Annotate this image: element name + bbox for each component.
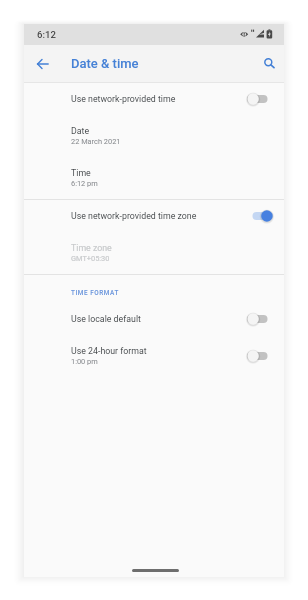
staticText: Use network-provided time [71, 94, 294, 104]
staticText: 6:12 pm [71, 179, 98, 188]
button[interactable]: Time [24, 157, 284, 199]
button[interactable]: Use network-provided time zone [24, 200, 284, 232]
button[interactable]: Use 24-hour format [24, 335, 284, 377]
staticText: TIME FORMAT [71, 289, 119, 297]
button[interactable]: Time zone [24, 232, 284, 274]
staticText: 22 March 2021 [71, 137, 121, 146]
button[interactable]: Navigate up [31, 52, 55, 76]
staticText: Use 24-hour format [71, 346, 147, 356]
button[interactable]: Use network-provided time [24, 83, 284, 114]
staticText: GMT+05:30 [71, 254, 110, 263]
staticText: 6:12 [37, 29, 56, 40]
staticText: Use network-provided time zone [71, 211, 294, 221]
button[interactable]: Search [257, 52, 281, 76]
staticText: Time [71, 168, 91, 178]
button[interactable]: Use locale default [24, 303, 284, 335]
staticText: Date & time [71, 56, 139, 71]
button[interactable]: Date [24, 114, 284, 157]
staticText: Time zone [71, 243, 112, 253]
staticText: 1:00 pm [71, 357, 98, 366]
staticText: Date [71, 126, 90, 136]
staticText: Use locale default [71, 314, 294, 324]
